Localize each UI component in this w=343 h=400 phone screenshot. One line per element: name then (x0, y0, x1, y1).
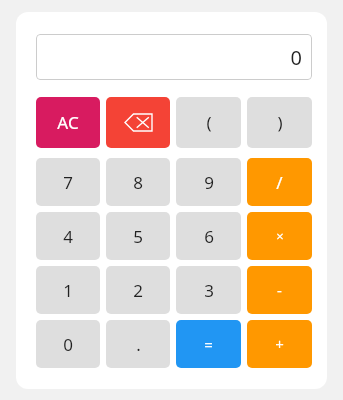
staticText: - (277, 280, 282, 300)
staticText: 0 (290, 44, 302, 71)
staticText: 0 (63, 333, 73, 356)
button[interactable]: 1 (36, 266, 100, 314)
staticText: = (204, 334, 213, 354)
button[interactable]: . (106, 320, 170, 368)
staticText: 8 (133, 171, 143, 194)
button[interactable]: ) (247, 97, 312, 148)
button[interactable]: 9 (176, 158, 241, 206)
button[interactable]: 2 (106, 266, 170, 314)
button[interactable]: × (247, 212, 312, 260)
button[interactable]: 0 (36, 34, 312, 80)
button[interactable]: - (247, 266, 312, 314)
staticText: ( (206, 111, 212, 134)
staticText: 6 (204, 225, 214, 248)
button[interactable]: / (247, 158, 312, 206)
staticText: 4 (63, 225, 73, 248)
staticText: 1 (63, 279, 73, 302)
staticText: / (276, 171, 283, 194)
staticText: . (136, 333, 141, 356)
staticText: 3 (204, 279, 214, 302)
staticText: 7 (63, 171, 73, 194)
button[interactable]: = (176, 320, 241, 368)
staticText: ) (277, 111, 283, 134)
staticText: AC (57, 111, 79, 134)
button[interactable]: 5 (106, 212, 170, 260)
button[interactable]: 8 (106, 158, 170, 206)
button[interactable]: + (247, 320, 312, 368)
button[interactable]: ( (176, 97, 241, 148)
staticText: × (276, 227, 284, 245)
button[interactable]: 7 (36, 158, 100, 206)
button[interactable]: 0 (36, 320, 100, 368)
staticText: 5 (133, 225, 143, 248)
button[interactable]: 4 (36, 212, 100, 260)
staticText: + (275, 334, 284, 354)
staticText: 2 (133, 279, 143, 302)
staticText: 9 (204, 171, 214, 194)
button[interactable]: 3 (176, 266, 241, 314)
button[interactable]: AC (36, 97, 100, 148)
button[interactable]: 6 (176, 212, 241, 260)
button[interactable]: Backspace (106, 97, 170, 148)
